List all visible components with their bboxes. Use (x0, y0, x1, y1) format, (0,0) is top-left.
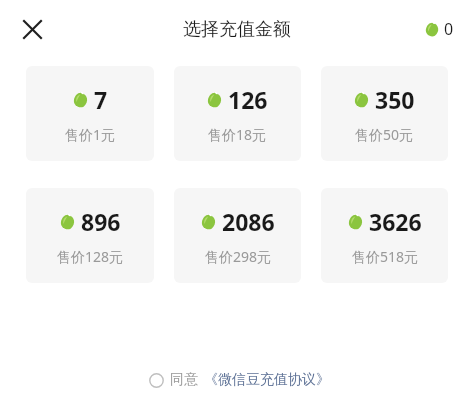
staticText: 2086 (222, 206, 275, 237)
staticText: 选择充值金额 (183, 18, 291, 41)
button[interactable]: 126 (174, 66, 301, 161)
staticText: 0 (444, 18, 454, 40)
staticText: 126 (228, 84, 268, 115)
staticText: 售价50元 (355, 125, 414, 144)
staticText: 896 (81, 206, 121, 237)
staticText: 售价1元 (65, 125, 116, 144)
staticText: 售价298元 (205, 247, 272, 266)
button[interactable]: 896 (26, 188, 154, 283)
staticText: 同意 (170, 371, 198, 389)
staticText: 售价18元 (208, 125, 267, 144)
staticText: 350 (375, 84, 415, 115)
staticText: 售价128元 (57, 247, 124, 266)
button[interactable]: 0 (425, 18, 454, 40)
button[interactable]: Agree checkbox (145, 367, 202, 393)
button[interactable]: Close (10, 7, 54, 51)
staticText: 《微信豆充值协议》 (204, 371, 330, 389)
button[interactable]: 3626 (321, 188, 448, 283)
button[interactable]: 350 (321, 66, 448, 161)
other: Agree checkbox (149, 373, 164, 388)
button[interactable]: 《微信豆充值协议》 (204, 367, 330, 393)
staticText: 7 (94, 84, 108, 115)
button[interactable]: 7 (26, 66, 154, 161)
button[interactable]: 2086 (174, 188, 301, 283)
staticText: 售价518元 (352, 247, 419, 266)
staticText: 3626 (369, 206, 422, 237)
